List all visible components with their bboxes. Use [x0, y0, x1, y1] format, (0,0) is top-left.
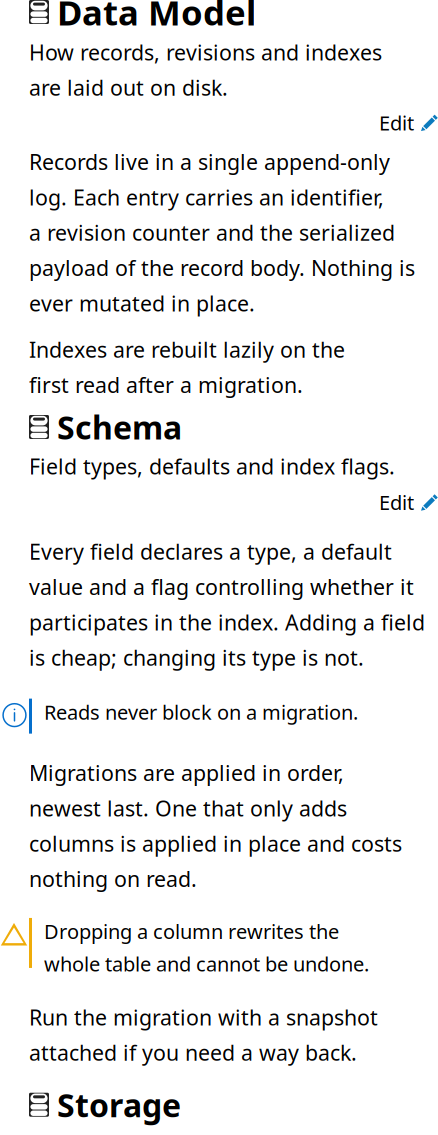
staticText: Records live in a single append-only	[29, 148, 390, 176]
staticText: value and a flag controlling whether it	[29, 573, 414, 601]
staticText: newest last. One that only adds	[29, 794, 347, 822]
staticText: Field types, defaults and index flags.	[29, 452, 395, 480]
staticText: log. Each entry carries an identifier,	[29, 183, 384, 211]
staticText: Edit	[379, 109, 414, 136]
staticText: Data Model	[57, 0, 256, 35]
staticText: Indexes are rebuilt lazily on the	[29, 335, 345, 364]
staticText: Reads never block on a migration.	[44, 699, 358, 725]
staticText: Every field declares a type, a default	[29, 537, 392, 566]
staticText: a revision counter and the serialized	[29, 218, 395, 247]
staticText: are laid out on disk.	[29, 73, 228, 102]
staticText: whole table and cannot be undone.	[44, 950, 369, 977]
staticText: columns is applied in place and costs	[29, 829, 402, 858]
staticText: participates in the index. Adding a fiel…	[29, 608, 425, 636]
staticText: Schema	[57, 406, 182, 448]
staticText: How records, revisions and indexes	[29, 38, 382, 66]
button[interactable]: Edit Edit	[0, 114, 438, 132]
button[interactable]: Edit Edit	[0, 493, 438, 511]
staticText: Edit	[379, 489, 414, 516]
staticText: Dropping a column rewrites the	[44, 918, 339, 944]
staticText: Storage	[57, 1083, 181, 1126]
staticText: nothing on read.	[29, 865, 197, 893]
staticText: payload of the record body. Nothing is	[29, 254, 415, 282]
staticText: Run the migration with a snapshot	[29, 1003, 378, 1031]
staticText: first read after a migration.	[29, 371, 303, 399]
staticText: attached if you need a way back.	[29, 1038, 357, 1067]
staticText: ever mutated in place.	[29, 289, 255, 317]
staticText: is cheap; changing its type is not.	[29, 643, 364, 672]
staticText: Migrations are applied in order,	[29, 759, 344, 787]
